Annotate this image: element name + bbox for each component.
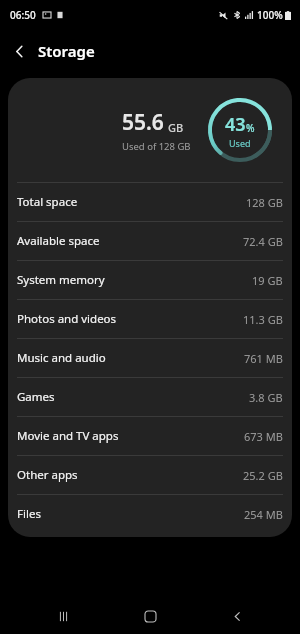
staticText: 25.2 GB xyxy=(243,468,283,483)
staticText: 43 xyxy=(225,112,246,137)
staticText: Used of 128 GB xyxy=(122,140,191,153)
staticText: 72.4 GB xyxy=(243,234,283,249)
button[interactable]: Music and audio xyxy=(8,339,292,377)
button[interactable]: Photos and videos xyxy=(8,300,292,338)
staticText: 254 MB xyxy=(244,507,283,522)
staticText: 19 GB xyxy=(252,273,283,288)
button[interactable]: Back xyxy=(213,598,261,634)
staticText: Photos and videos xyxy=(17,311,117,327)
button[interactable]: Files xyxy=(8,495,292,533)
button[interactable]: Back xyxy=(0,32,38,70)
button[interactable]: Movie and TV apps xyxy=(8,417,292,455)
button[interactable]: System memory xyxy=(8,261,292,299)
staticText: Music and audio xyxy=(17,350,106,366)
staticText: Used xyxy=(229,137,251,149)
staticText: Storage xyxy=(38,41,95,61)
staticText: 673 MB xyxy=(244,429,283,444)
staticText: 100% xyxy=(257,8,283,22)
button[interactable]: Other apps xyxy=(8,456,292,494)
button[interactable]: Games xyxy=(8,378,292,416)
staticText: 06:50 xyxy=(10,8,36,22)
staticText: Available space xyxy=(17,233,100,249)
staticText: Other apps xyxy=(17,467,78,483)
button[interactable]: Available space xyxy=(8,222,292,260)
staticText: Total space xyxy=(17,194,78,210)
button[interactable]: Total space xyxy=(8,183,292,221)
staticText: 55.6 xyxy=(122,108,164,137)
staticText: Files xyxy=(17,506,41,522)
staticText: GB xyxy=(168,120,184,135)
staticText: % xyxy=(246,121,255,135)
staticText: 128 GB xyxy=(246,195,283,210)
button[interactable]: Home xyxy=(126,598,174,634)
staticText: Movie and TV apps xyxy=(17,428,119,444)
button[interactable]: Recent apps xyxy=(39,598,87,634)
staticText: 761 MB xyxy=(244,351,283,366)
staticText: 11.3 GB xyxy=(243,312,283,327)
staticText: Games xyxy=(17,389,55,405)
staticText: System memory xyxy=(17,272,105,288)
staticText: 3.8 GB xyxy=(249,390,283,405)
